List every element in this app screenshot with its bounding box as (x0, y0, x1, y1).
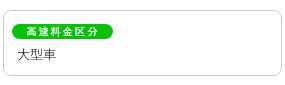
staticText: 高速料金区分 (26, 25, 100, 38)
staticText: 大型車 (17, 46, 56, 62)
button[interactable]: 高速料金区分 (12, 24, 113, 39)
button[interactable]: 高速料金区分 (3, 10, 282, 76)
